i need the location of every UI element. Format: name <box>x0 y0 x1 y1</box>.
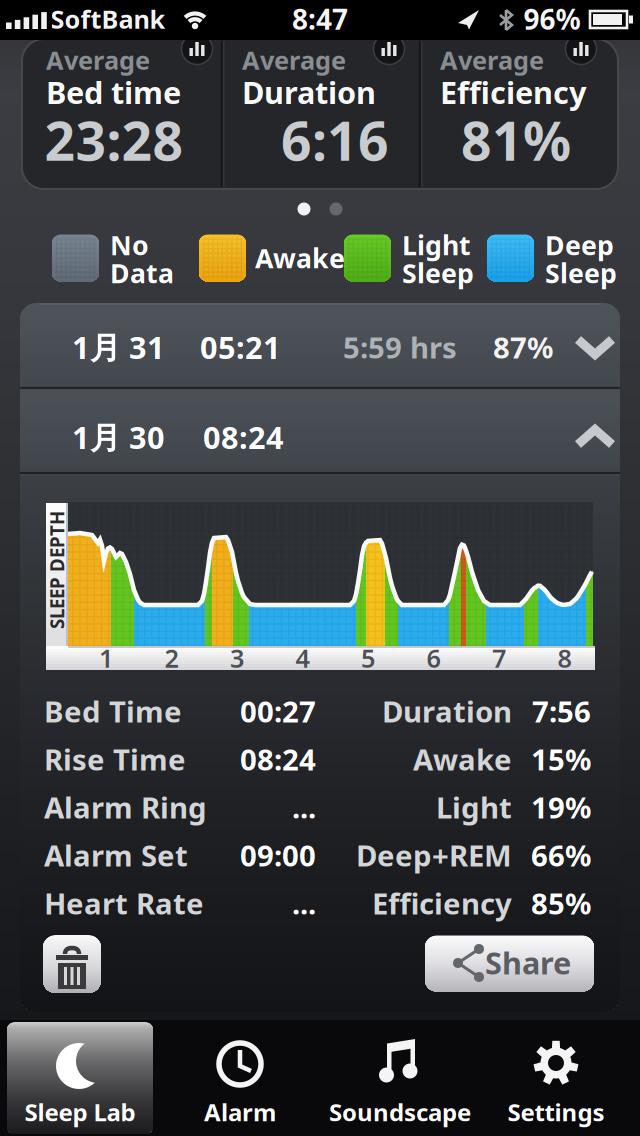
staticText: Alarm Ring <box>44 787 207 826</box>
staticText: Awake <box>255 240 345 276</box>
staticText: 87% <box>493 327 553 366</box>
staticText: 8:47 <box>292 0 348 38</box>
staticText: Average <box>242 43 346 77</box>
button[interactable]: 1月 31 <box>20 303 620 387</box>
staticText: 1 <box>99 641 113 675</box>
staticText: Share <box>485 942 571 983</box>
staticText: Settings <box>507 1096 604 1128</box>
staticText: 08:24 <box>240 739 316 778</box>
staticText: ... <box>292 883 316 922</box>
staticText: Light <box>436 787 512 826</box>
staticText: 3 <box>230 641 244 675</box>
staticText: Efficiency <box>440 72 587 112</box>
button[interactable]: Settings <box>478 1020 638 1136</box>
button[interactable]: Statistics <box>373 33 404 64</box>
staticText: Duration <box>382 691 512 730</box>
staticText: 1月 31 <box>72 327 165 367</box>
staticText: 6 <box>426 641 440 675</box>
staticText: Data <box>110 255 174 291</box>
staticText: Heart Rate <box>44 883 204 922</box>
staticText: Efficiency <box>372 883 512 922</box>
staticText: Average <box>440 43 544 77</box>
staticText: 2 <box>164 641 178 675</box>
staticText: 05:21 <box>200 327 281 367</box>
staticText: 81% <box>461 105 571 175</box>
staticText: 00:27 <box>240 691 316 730</box>
staticText: Duration <box>242 72 376 112</box>
staticText: SLEEP DEPTH <box>0 558 116 582</box>
staticText: Deep <box>545 227 614 263</box>
staticText: Alarm <box>204 1096 276 1128</box>
button[interactable]: Alarm <box>160 1020 320 1136</box>
staticText: 8 <box>557 641 571 675</box>
staticText: Rise Time <box>44 739 186 778</box>
staticText: 7:56 <box>532 691 591 730</box>
staticText: Soundscape <box>329 1096 471 1128</box>
staticText: 08:24 <box>203 417 284 457</box>
staticText: 4 <box>295 641 309 675</box>
staticText: 1月 30 <box>72 417 165 457</box>
staticText: SoftBank <box>50 2 165 36</box>
button[interactable]: Delete <box>43 935 101 993</box>
button[interactable]: Share <box>425 935 594 991</box>
button[interactable]: 1月 30 <box>20 390 620 472</box>
staticText: 19% <box>531 787 591 826</box>
staticText: Average <box>46 43 150 77</box>
staticText: Sleep Lab <box>24 1096 135 1128</box>
staticText: Awake <box>413 739 512 778</box>
staticText: No <box>110 227 149 263</box>
staticText: 5:59 hrs <box>343 327 457 366</box>
staticText: Sleep <box>545 255 617 291</box>
staticText: Alarm Set <box>44 835 188 874</box>
button[interactable]: Soundscape <box>320 1020 480 1136</box>
staticText: Sleep <box>402 255 474 291</box>
button[interactable]: Sleep Lab <box>0 1020 160 1136</box>
staticText: 85% <box>531 883 591 922</box>
staticText: 7 <box>492 641 506 675</box>
staticText: Bed Time <box>44 691 182 730</box>
staticText: 96% <box>523 0 580 38</box>
staticText: Light <box>402 227 471 263</box>
staticText: Bed time <box>46 72 181 112</box>
staticText: 5 <box>361 641 375 675</box>
button[interactable]: Statistics <box>565 33 596 64</box>
staticText: 09:00 <box>240 835 316 874</box>
button[interactable]: Statistics <box>181 33 212 64</box>
staticText: 23:28 <box>44 105 183 175</box>
staticText: Deep+REM <box>356 835 512 874</box>
staticText: 6:16 <box>281 105 389 175</box>
staticText: 15% <box>531 739 591 778</box>
staticText: ... <box>292 787 316 826</box>
staticText: 66% <box>531 835 591 874</box>
